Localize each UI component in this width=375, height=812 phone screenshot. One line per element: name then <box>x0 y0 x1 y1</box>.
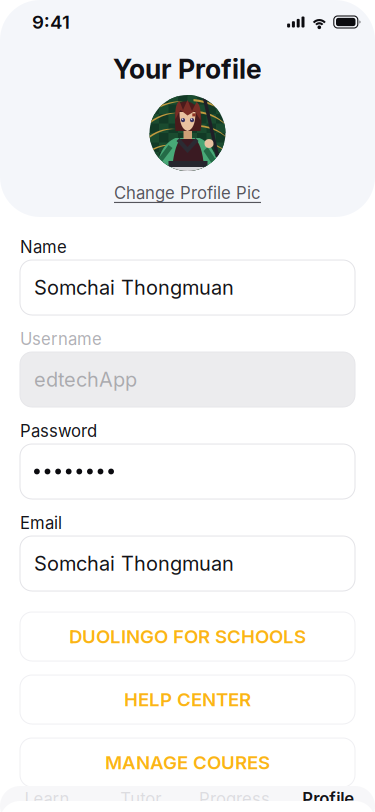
button[interactable]: Progress <box>187 790 281 808</box>
staticText: Your Profile <box>113 53 262 85</box>
button[interactable]: HELP CENTER <box>20 675 355 724</box>
button[interactable]: Profile <box>281 790 375 808</box>
staticText: Email <box>20 513 62 533</box>
staticText: edtechApp <box>34 367 137 392</box>
staticText: Tutor <box>120 789 161 809</box>
staticText: MANAGE COURES <box>105 751 270 774</box>
button[interactable]: Tutor <box>94 790 188 808</box>
button[interactable]: DUOLINGO FOR SCHOOLS <box>20 612 355 661</box>
button[interactable]: Learn <box>0 790 94 808</box>
staticText: Progress <box>199 789 270 809</box>
staticText: Somchai Thongmuan <box>34 551 234 576</box>
staticText: Name <box>20 237 67 257</box>
button[interactable]: MANAGE COURES <box>20 738 355 787</box>
staticText: Username <box>20 329 102 349</box>
staticText: Somchai Thongmuan <box>34 275 234 300</box>
staticText: Change Profile Pic <box>114 183 261 203</box>
staticText: Password <box>20 421 97 441</box>
staticText: 9:41 <box>32 11 70 33</box>
staticText: Learn <box>24 789 69 809</box>
staticText: Profile <box>302 789 354 809</box>
staticText: DUOLINGO FOR SCHOOLS <box>69 625 306 648</box>
button[interactable]: Change Profile Pic <box>0 183 375 203</box>
staticText: HELP CENTER <box>124 688 251 711</box>
